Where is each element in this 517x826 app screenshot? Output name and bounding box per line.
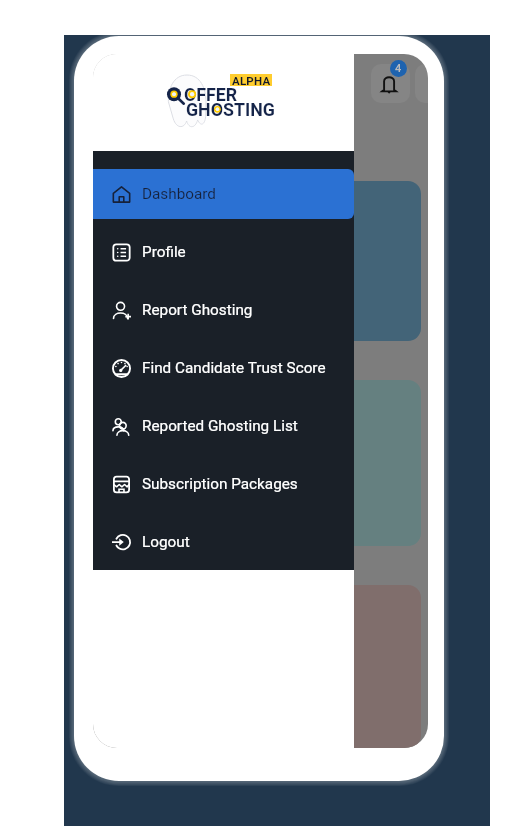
staticText: Reported Ghosting List <box>142 417 298 435</box>
button[interactable]: Find Candidate Trust Score <box>93 343 354 393</box>
button[interactable]: Report Ghosting <box>93 285 354 335</box>
staticText: Logout <box>142 533 190 551</box>
staticText: Report Ghosting <box>142 301 253 319</box>
button[interactable]: Subscription Packages <box>93 459 354 509</box>
staticText: Dashboard <box>142 185 216 203</box>
button[interactable]: Reported Ghosting List <box>93 401 354 451</box>
staticText: 4 <box>395 62 402 75</box>
staticText: Find Candidate Trust Score <box>142 359 326 377</box>
button[interactable]: Logout <box>93 517 354 567</box>
button[interactable]: Profile <box>93 227 354 277</box>
staticText: GHOSTING <box>186 99 275 120</box>
staticText: Profile <box>142 243 186 261</box>
button[interactable]: Notifications <box>371 64 410 103</box>
button[interactable]: Dashboard <box>93 169 354 219</box>
staticText: Subscription Packages <box>142 475 298 493</box>
staticText: ALPHA <box>232 74 271 86</box>
staticText: OFFER <box>184 84 238 105</box>
